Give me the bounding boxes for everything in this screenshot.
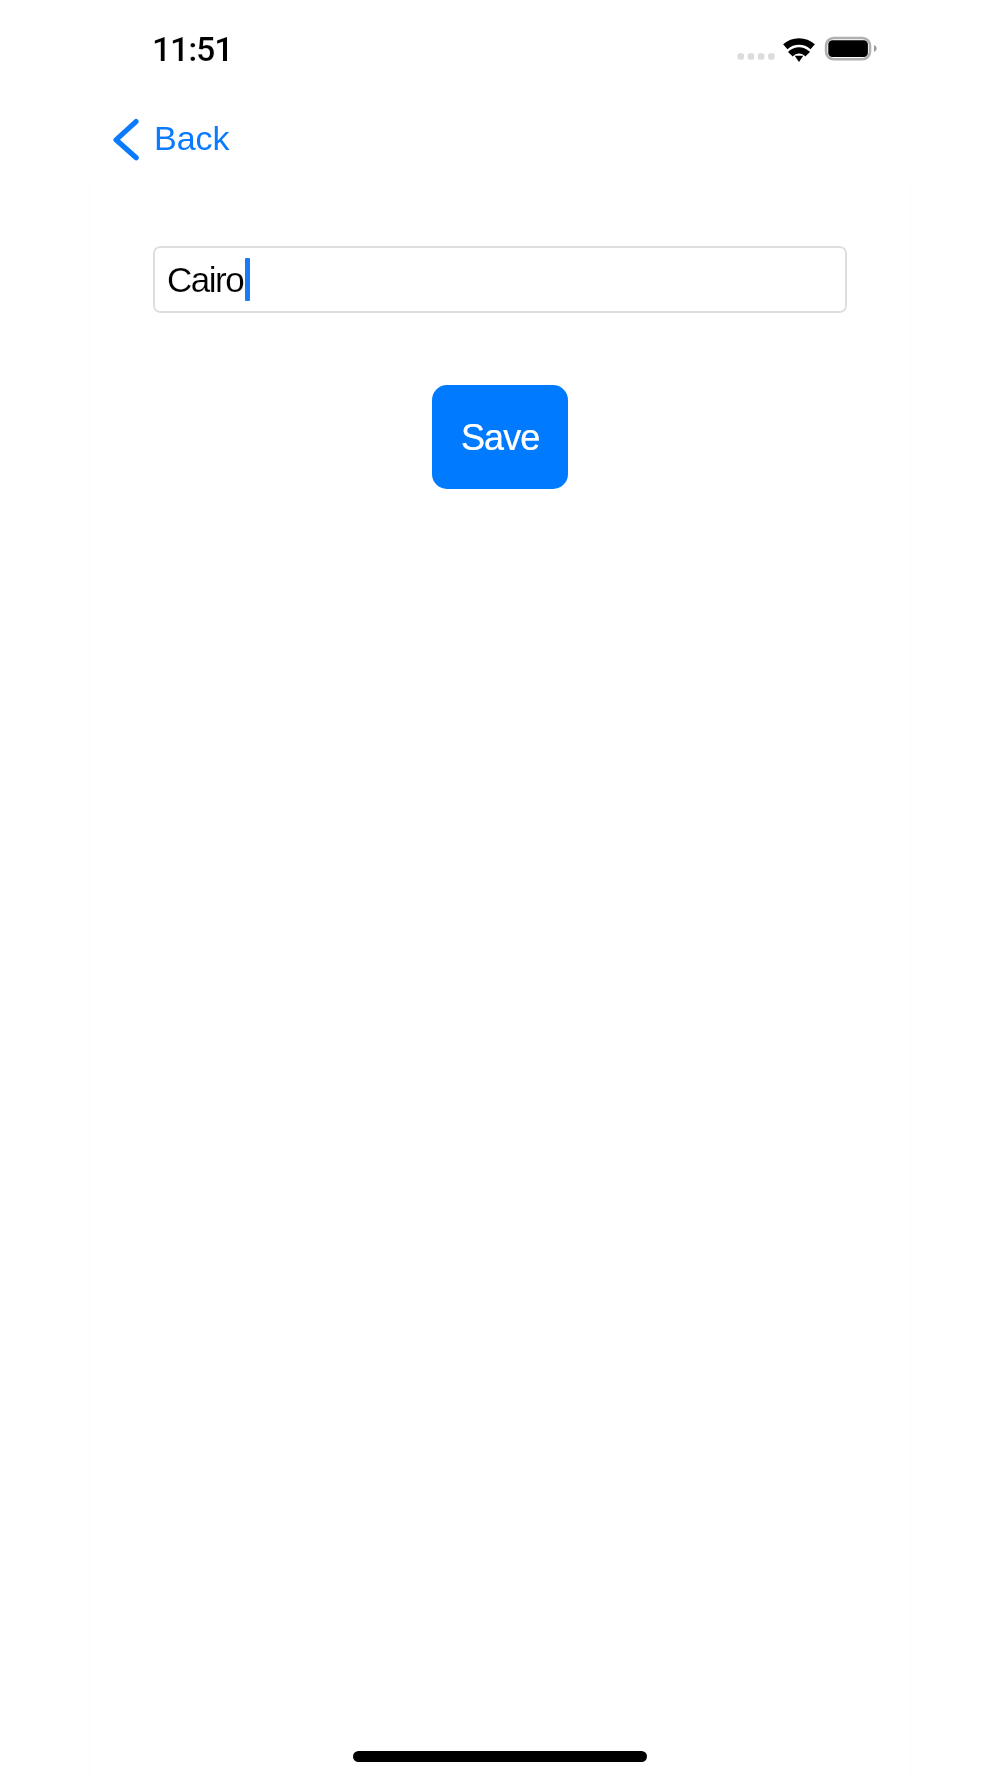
other: Wi-Fi: [778, 33, 820, 65]
staticText: 11:51: [152, 29, 233, 69]
button[interactable]: Save: [432, 385, 568, 489]
button[interactable]: Back: [106, 108, 220, 170]
staticText: Back: [154, 119, 230, 157]
button[interactable]: City name text field: [153, 246, 847, 313]
other: Battery full: [822, 34, 880, 64]
other: Cellular signal: [735, 50, 777, 62]
staticText: Save: [461, 417, 540, 457]
staticText: Cairo: [167, 260, 244, 299]
